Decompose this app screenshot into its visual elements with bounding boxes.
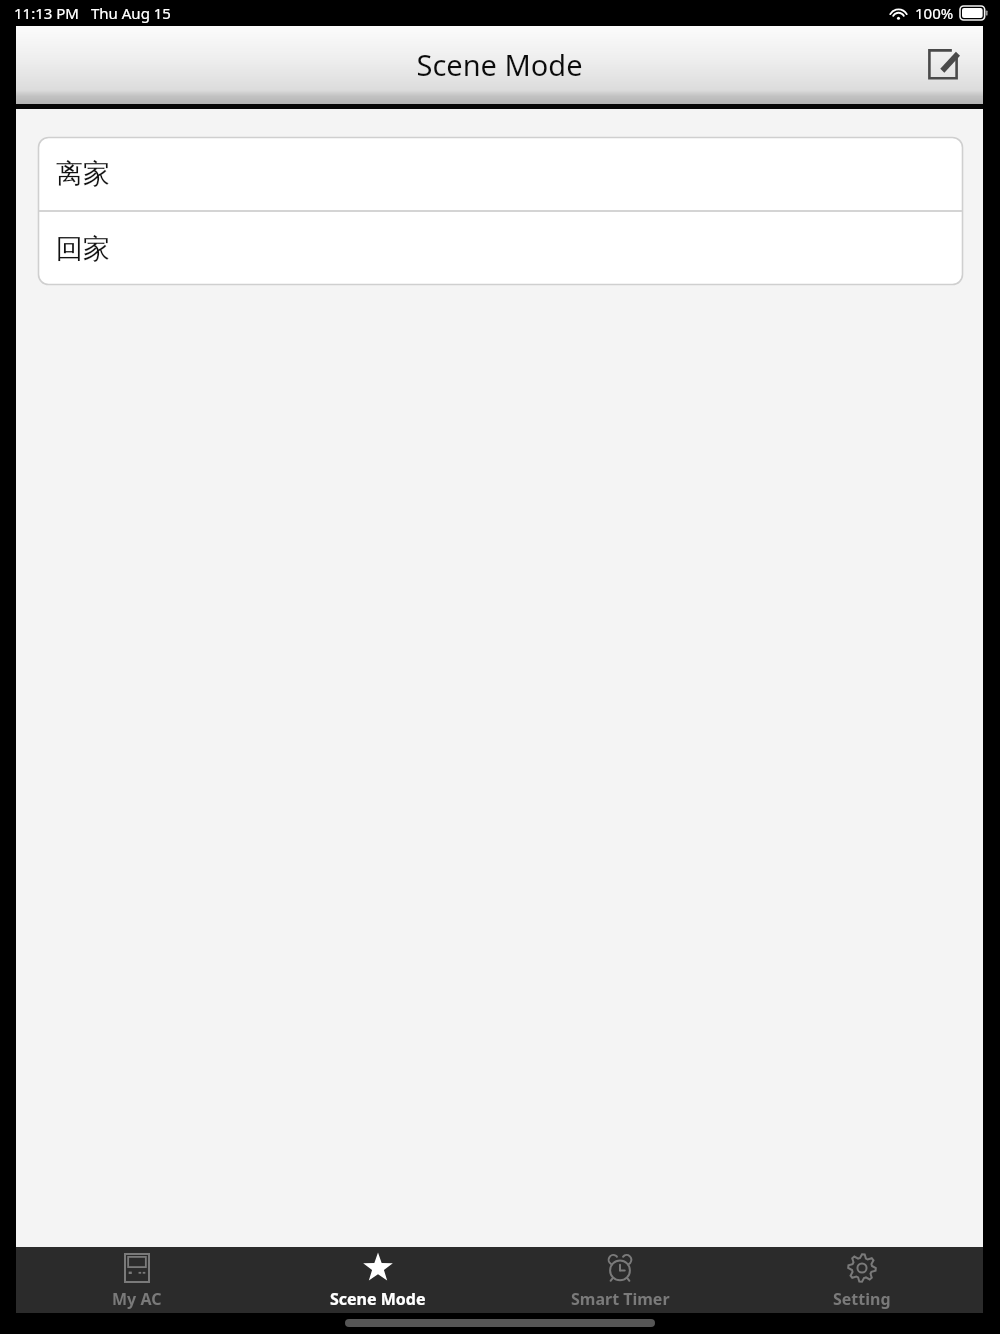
staticText: 100%: [915, 3, 954, 23]
staticText: Setting: [833, 1288, 891, 1310]
staticText: Scene Mode: [416, 45, 583, 84]
staticText: 离家: [56, 157, 110, 191]
button[interactable]: Setting: [741, 1247, 983, 1313]
staticText: My AC: [112, 1288, 162, 1310]
staticText: Thu Aug 15: [91, 3, 171, 23]
staticText: Scene Mode: [330, 1288, 426, 1310]
button[interactable]: Edit: [915, 36, 971, 92]
button[interactable]: 回家: [38, 212, 963, 285]
button[interactable]: Smart Timer: [499, 1247, 741, 1313]
button[interactable]: My AC: [16, 1247, 257, 1313]
staticText: 11:13 PM: [14, 3, 79, 23]
staticText: 回家: [56, 232, 110, 266]
button[interactable]: Scene Mode: [257, 1247, 499, 1313]
button[interactable]: 离家: [38, 137, 963, 210]
staticText: Smart Timer: [571, 1288, 670, 1310]
